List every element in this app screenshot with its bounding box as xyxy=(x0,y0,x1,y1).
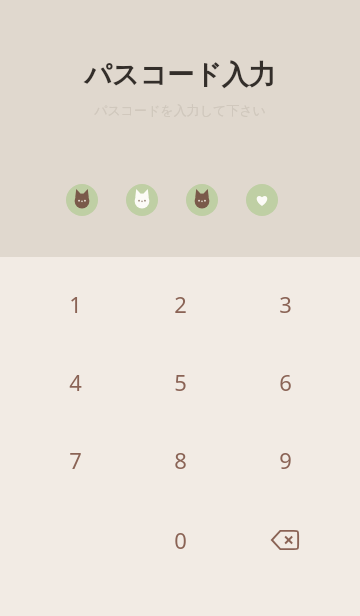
button[interactable]: 3 xyxy=(237,269,333,339)
staticText: 8 xyxy=(174,445,187,475)
staticText: 5 xyxy=(174,367,187,397)
button[interactable]: 5 xyxy=(132,347,228,417)
button[interactable]: 7 xyxy=(27,425,123,495)
staticText: パスコード入力 xyxy=(84,58,276,92)
staticText: 9 xyxy=(279,445,292,475)
button[interactable]: 0 xyxy=(132,505,228,575)
button[interactable]: Delete xyxy=(237,505,333,575)
button[interactable]: 4 xyxy=(27,347,123,417)
staticText: 1 xyxy=(69,289,82,319)
staticText: 4 xyxy=(69,367,82,397)
staticText: パスコードを入力して下さい xyxy=(94,102,266,118)
button[interactable]: 8 xyxy=(132,425,228,495)
button[interactable]: 9 xyxy=(237,425,333,495)
staticText: 3 xyxy=(279,289,292,319)
button[interactable]: 2 xyxy=(132,269,228,339)
staticText: 0 xyxy=(174,525,187,555)
staticText: 2 xyxy=(174,289,187,319)
button[interactable]: 1 xyxy=(27,269,123,339)
staticText: 6 xyxy=(279,367,292,397)
button[interactable]: 6 xyxy=(237,347,333,417)
staticText: 7 xyxy=(69,445,82,475)
